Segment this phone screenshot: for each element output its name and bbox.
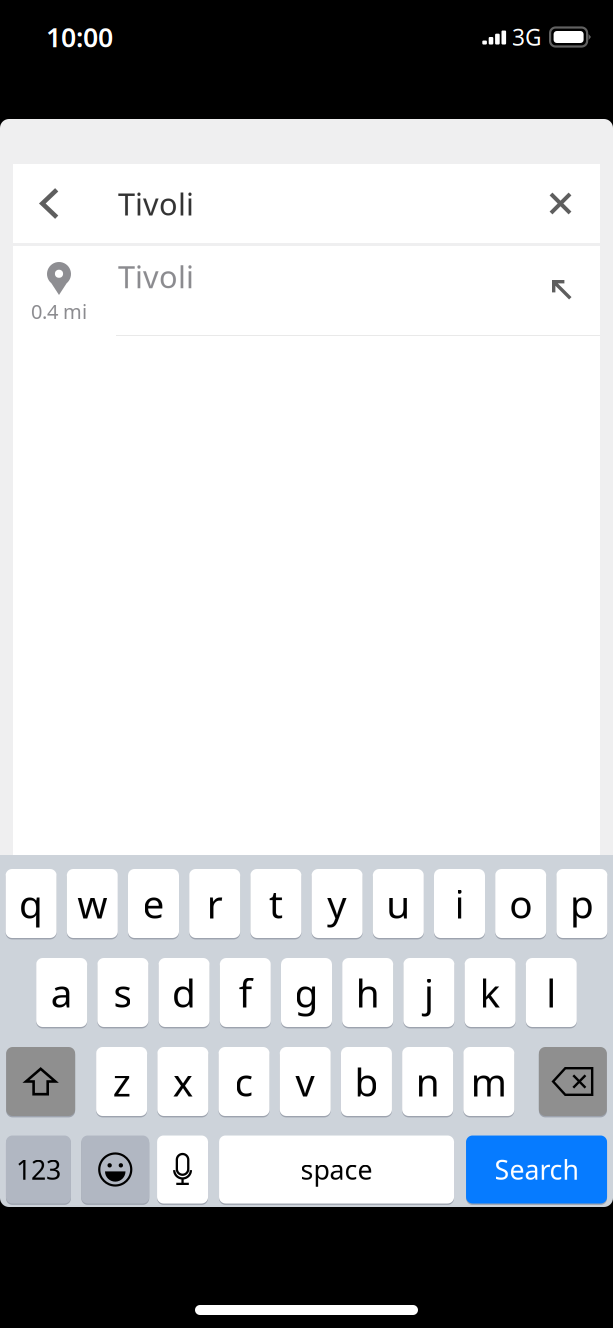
- button[interactable]: v: [280, 1047, 331, 1117]
- staticText: b: [354, 1056, 378, 1107]
- button[interactable]: i: [434, 869, 485, 939]
- staticText: x: [173, 1056, 193, 1107]
- button[interactable]: 123: [6, 1135, 71, 1205]
- staticText: a: [51, 967, 73, 1018]
- staticText: space: [301, 1152, 373, 1187]
- staticText: c: [234, 1056, 253, 1107]
- staticText: Search: [495, 1152, 579, 1187]
- button[interactable]: l: [526, 958, 577, 1028]
- staticText: 3G: [512, 22, 542, 52]
- staticText: Tivoli: [118, 183, 194, 224]
- button[interactable]: z: [96, 1047, 147, 1117]
- staticText: h: [356, 967, 380, 1018]
- button[interactable]: n: [402, 1047, 453, 1117]
- button[interactable]: k: [465, 958, 516, 1028]
- staticText: 0.4 mi: [31, 298, 87, 325]
- button[interactable]: Shift: [6, 1047, 75, 1117]
- button[interactable]: space: [219, 1135, 454, 1205]
- staticText: m: [471, 1056, 507, 1107]
- staticText: p: [570, 878, 594, 929]
- button[interactable]: x: [157, 1047, 208, 1117]
- button[interactable]: Dictation: [157, 1135, 208, 1205]
- button[interactable]: o: [495, 869, 546, 939]
- button[interactable]: q: [6, 869, 57, 939]
- staticText: 123: [16, 1152, 61, 1187]
- button[interactable]: Emoji: [81, 1135, 149, 1205]
- staticText: u: [386, 878, 410, 929]
- staticText: e: [142, 878, 164, 929]
- button[interactable]: m: [463, 1047, 514, 1117]
- button[interactable]: p: [556, 869, 607, 939]
- button[interactable]: d: [159, 958, 210, 1028]
- button[interactable]: Tivoli: [13, 164, 600, 243]
- button[interactable]: Search: [466, 1135, 607, 1205]
- button[interactable]: s: [97, 958, 148, 1028]
- staticText: Tivoli: [118, 256, 194, 297]
- button[interactable]: w: [67, 869, 118, 939]
- staticText: z: [113, 1056, 131, 1107]
- button[interactable]: t: [250, 869, 301, 939]
- staticText: d: [172, 967, 196, 1018]
- staticText: y: [327, 878, 347, 929]
- button[interactable]: c: [218, 1047, 269, 1117]
- button[interactable]: r: [189, 869, 240, 939]
- button[interactable]: y: [312, 869, 363, 939]
- staticText: i: [454, 878, 464, 929]
- button[interactable]: h: [342, 958, 393, 1028]
- staticText: r: [207, 878, 223, 929]
- button[interactable]: e: [128, 869, 179, 939]
- staticText: q: [19, 878, 43, 929]
- button[interactable]: Delete: [539, 1047, 607, 1117]
- staticText: 10:00: [46, 19, 113, 55]
- staticText: k: [480, 967, 501, 1018]
- staticText: w: [77, 878, 107, 929]
- staticText: v: [295, 1056, 315, 1107]
- staticText: t: [269, 878, 283, 929]
- button[interactable]: f: [220, 958, 271, 1028]
- staticText: o: [509, 878, 532, 929]
- button[interactable]: u: [373, 869, 424, 939]
- button[interactable]: j: [403, 958, 454, 1028]
- staticText: s: [113, 967, 132, 1018]
- staticText: f: [239, 967, 252, 1018]
- staticText: n: [416, 1056, 440, 1107]
- button[interactable]: 0.4 mi: [13, 246, 600, 336]
- staticText: g: [294, 967, 318, 1018]
- button[interactable]: b: [341, 1047, 392, 1117]
- staticText: j: [424, 967, 434, 1018]
- button[interactable]: a: [36, 958, 87, 1028]
- staticText: l: [546, 967, 556, 1018]
- button[interactable]: g: [281, 958, 332, 1028]
